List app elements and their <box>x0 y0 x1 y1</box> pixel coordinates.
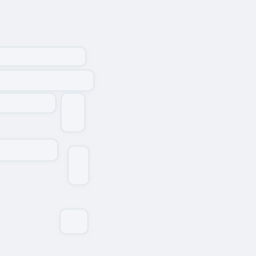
button[interactable]: Thumbnail 2 <box>68 146 89 185</box>
button[interactable]: Item 2 <box>0 139 58 161</box>
button[interactable]: Thumbnail 1 <box>61 93 85 132</box>
button[interactable]: Item 1 <box>0 93 56 113</box>
button[interactable]: Subtitle <box>0 70 94 91</box>
button[interactable]: Action <box>60 209 88 234</box>
button[interactable]: Title <box>0 47 86 66</box>
